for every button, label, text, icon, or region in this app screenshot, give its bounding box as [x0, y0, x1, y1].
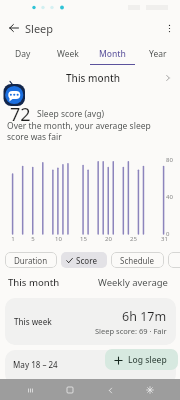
staticText: Week: [57, 48, 79, 60]
staticText: This month: [66, 71, 120, 85]
staticText: Sleep score (avg): [37, 108, 104, 120]
button[interactable]: Home: [60, 380, 80, 400]
staticText: Sleep score: 69 · Fair: [95, 326, 167, 336]
button[interactable]: Back: [100, 380, 120, 400]
staticText: 0: [166, 230, 170, 238]
button[interactable]: Assistant: [2, 78, 27, 108]
button[interactable]: Accessibility: [140, 380, 160, 400]
button[interactable]: Week: [45, 44, 90, 65]
staticText: This month: [8, 276, 60, 289]
staticText: 31: [161, 235, 168, 243]
staticText: 40: [166, 193, 173, 201]
staticText: Schedule: [120, 255, 155, 266]
staticText: Over the month, your average sleep score…: [7, 120, 151, 142]
staticText: 5: [31, 235, 35, 243]
button[interactable]: This week: [5, 298, 176, 345]
staticText: 6h 17m: [122, 308, 167, 325]
staticText: 15: [80, 235, 87, 243]
button[interactable]: Year: [135, 44, 180, 65]
button[interactable]: Schedule: [111, 252, 164, 268]
staticText: May 18 – 24: [13, 359, 58, 370]
staticText: Sleep: [25, 21, 54, 36]
button[interactable]: Back: [3, 17, 25, 39]
staticText: 80: [166, 156, 173, 164]
button[interactable]: Duration: [5, 252, 57, 268]
staticText: 20: [105, 235, 112, 243]
button[interactable]: [5, 350, 176, 384]
button[interactable]: Log sleep: [105, 349, 178, 370]
staticText: 25: [130, 235, 137, 243]
staticText: Month: [99, 48, 126, 60]
button[interactable]: Dee: [168, 252, 180, 268]
button[interactable]: Score: [61, 252, 107, 268]
staticText: Day: [15, 48, 31, 60]
button[interactable]: More options: [158, 17, 180, 39]
staticText: This week: [14, 316, 52, 327]
button[interactable]: Recent apps: [20, 380, 40, 400]
staticText: Score: [76, 255, 98, 266]
button[interactable]: Day: [0, 44, 45, 65]
button[interactable]: This month: [0, 69, 180, 87]
staticText: Weekly average: [98, 276, 168, 289]
staticText: Log sleep: [128, 354, 167, 366]
staticText: 72: [10, 102, 31, 127]
staticText: 1: [11, 235, 15, 243]
button[interactable]: Month: [90, 44, 135, 65]
staticText: Year: [149, 48, 167, 60]
staticText: Duration: [14, 255, 48, 266]
staticText: 10: [55, 235, 62, 243]
